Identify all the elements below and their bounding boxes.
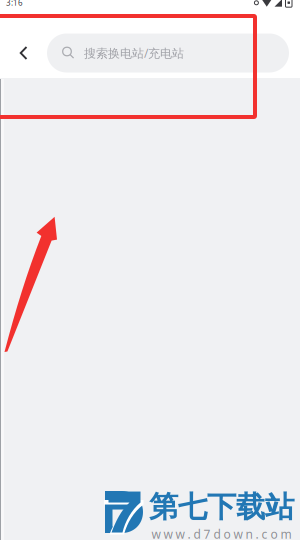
- staticText: w w w . d 7 d o w n . c o m: [151, 526, 291, 540]
- staticText: 3:16: [6, 0, 23, 8]
- staticText: 第七下载站: [149, 489, 294, 525]
- button[interactable]: Back: [0, 27, 47, 79]
- staticText: 搜索换电站/充电站: [84, 45, 184, 61]
- button[interactable]: 搜索换电站/充电站: [47, 33, 289, 72]
